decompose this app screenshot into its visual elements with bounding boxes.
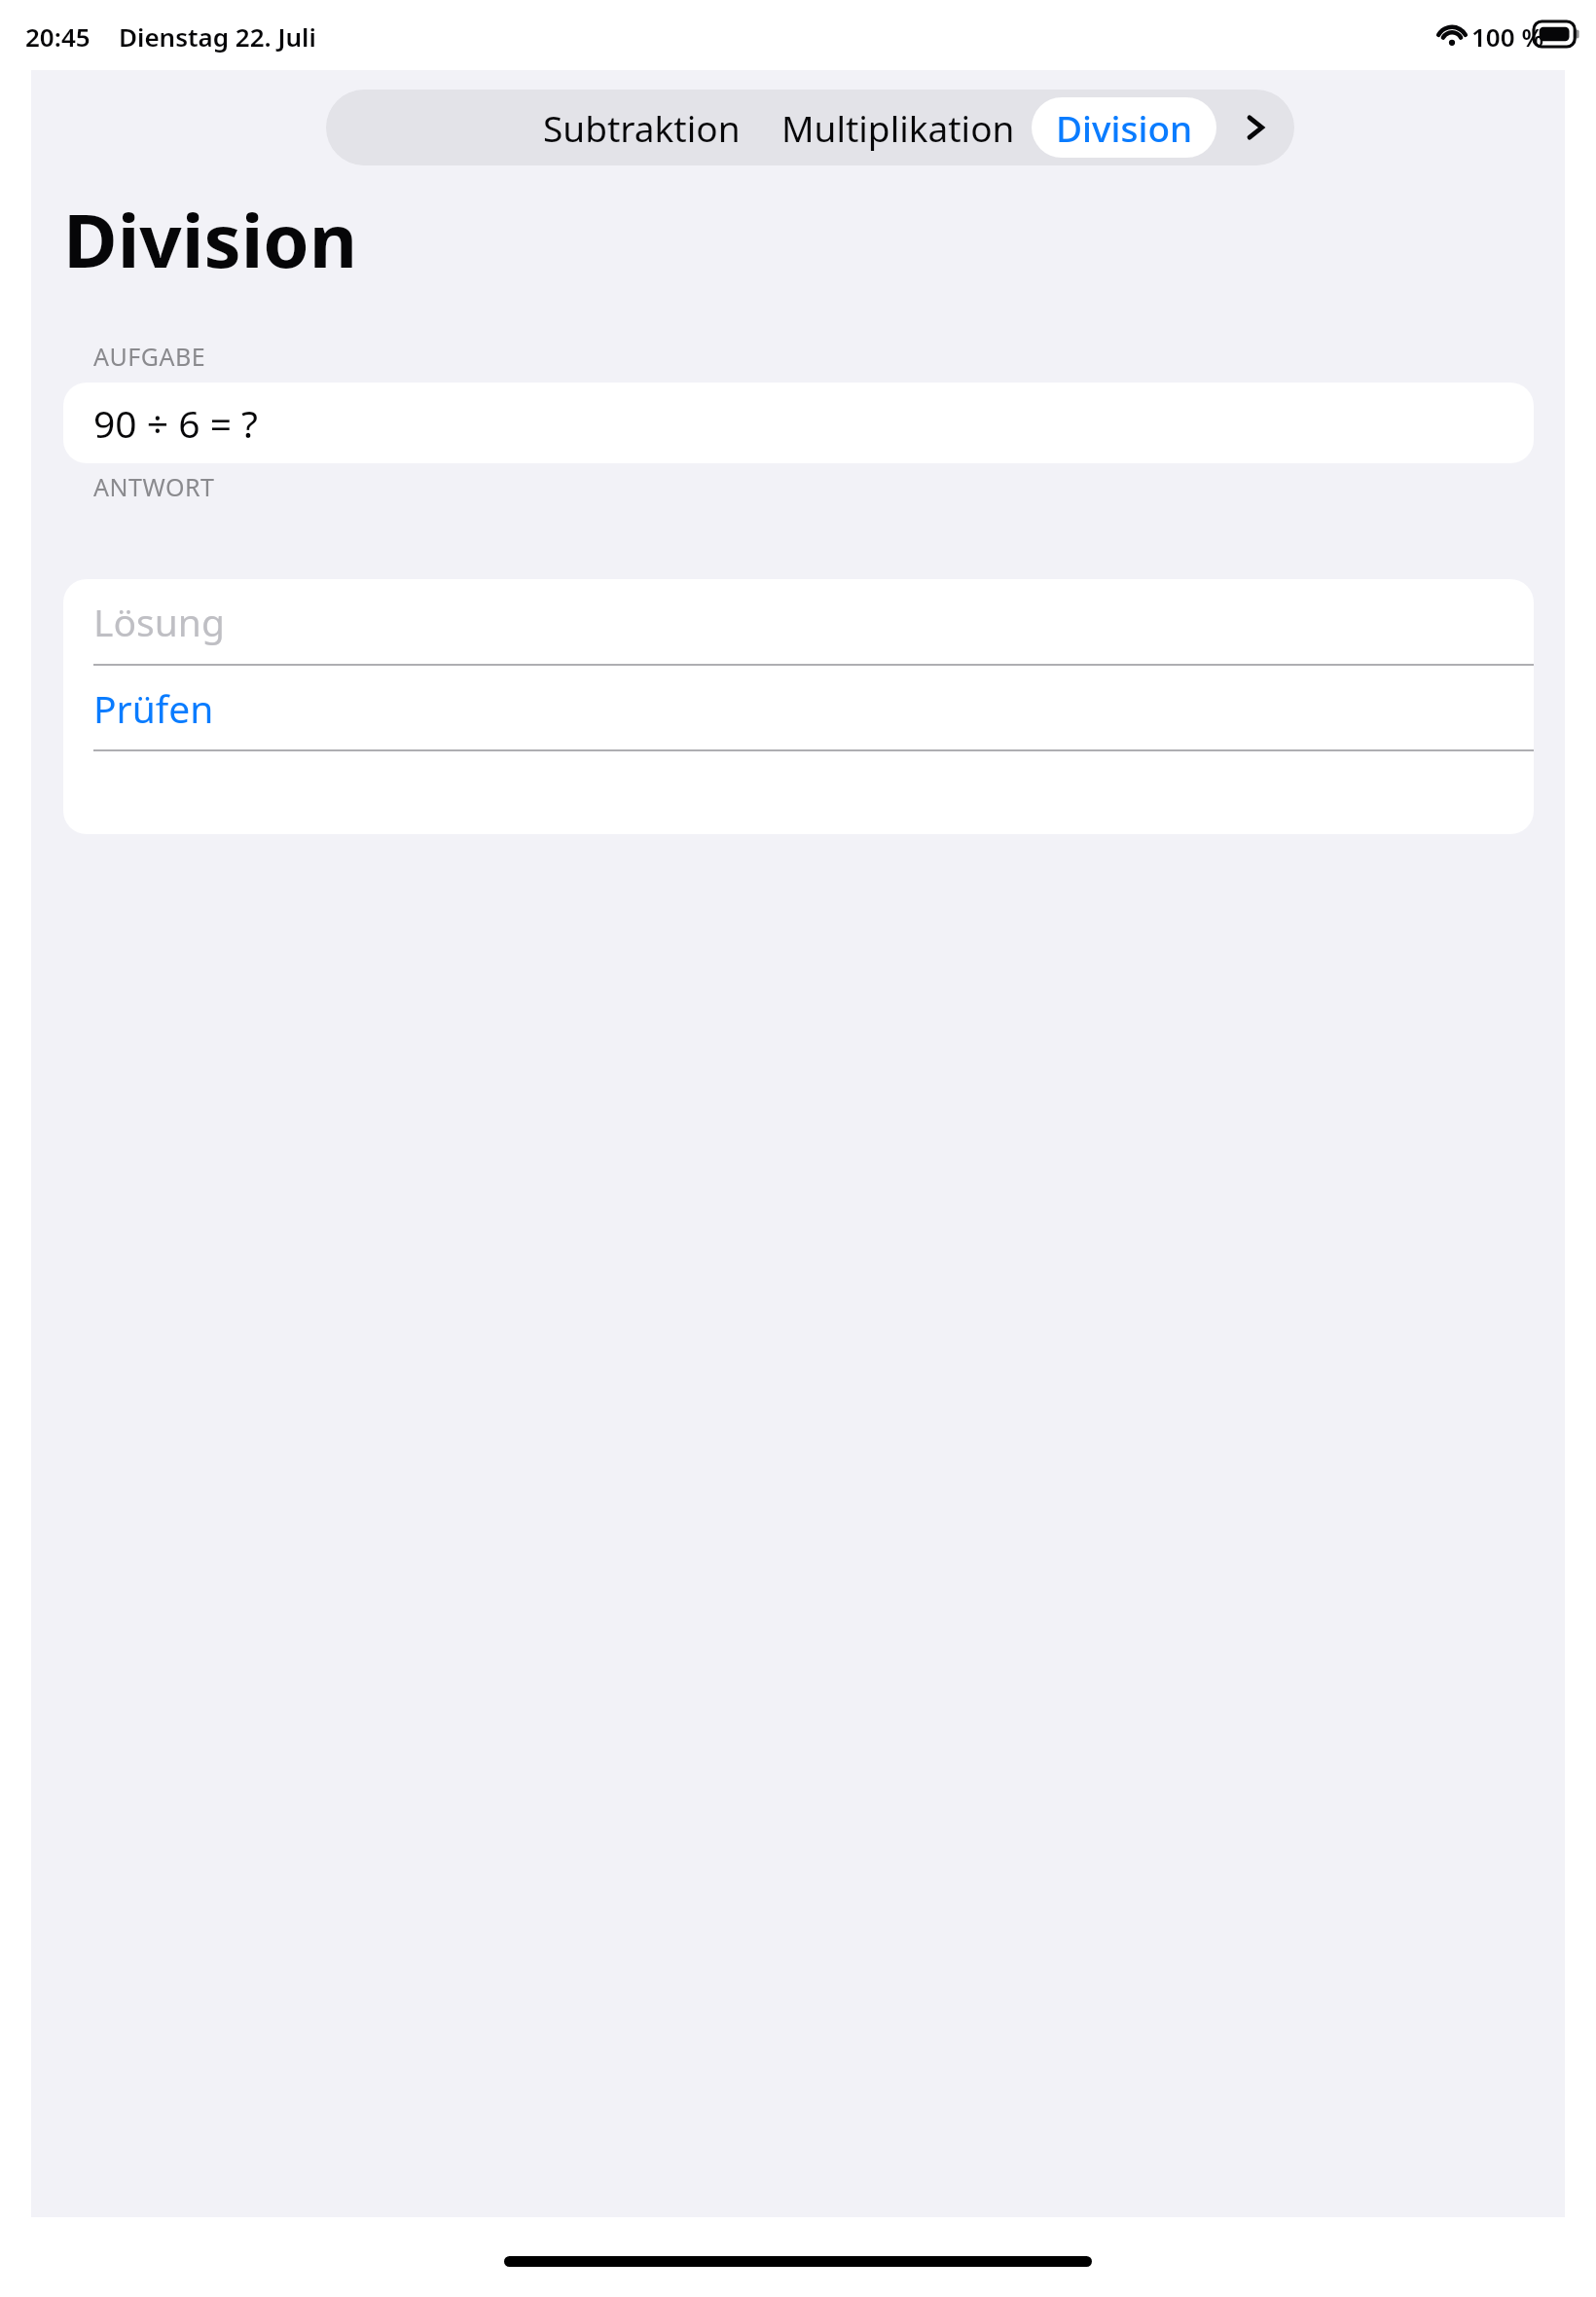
staticText: Subtraktion xyxy=(543,103,741,152)
staticText: ANTWORT xyxy=(93,470,215,503)
staticText: 20:45 xyxy=(25,19,91,54)
staticText: Division xyxy=(63,189,358,290)
button[interactable]: Prüfen xyxy=(63,666,1534,749)
staticText: Prüfen xyxy=(93,682,214,734)
button[interactable]: Subtraktion xyxy=(534,90,748,165)
staticText: Multiplikation xyxy=(781,103,1015,152)
staticText: Division xyxy=(1056,103,1193,152)
button[interactable]: Weiter xyxy=(1216,90,1294,165)
button[interactable]: Multiplikation xyxy=(772,90,1025,165)
staticText: 90 ÷ 6 = ? xyxy=(93,397,259,449)
staticText: Dienstag 22. Juli xyxy=(119,19,316,54)
button[interactable]: Division xyxy=(1032,97,1216,158)
button[interactable]: Lösung xyxy=(63,579,1534,664)
button[interactable]: 90 ÷ 6 = ? xyxy=(63,383,1534,463)
staticText: Lösung xyxy=(93,596,225,647)
staticText: 100 % xyxy=(1471,19,1544,54)
staticText: AUFGABE xyxy=(93,340,206,373)
